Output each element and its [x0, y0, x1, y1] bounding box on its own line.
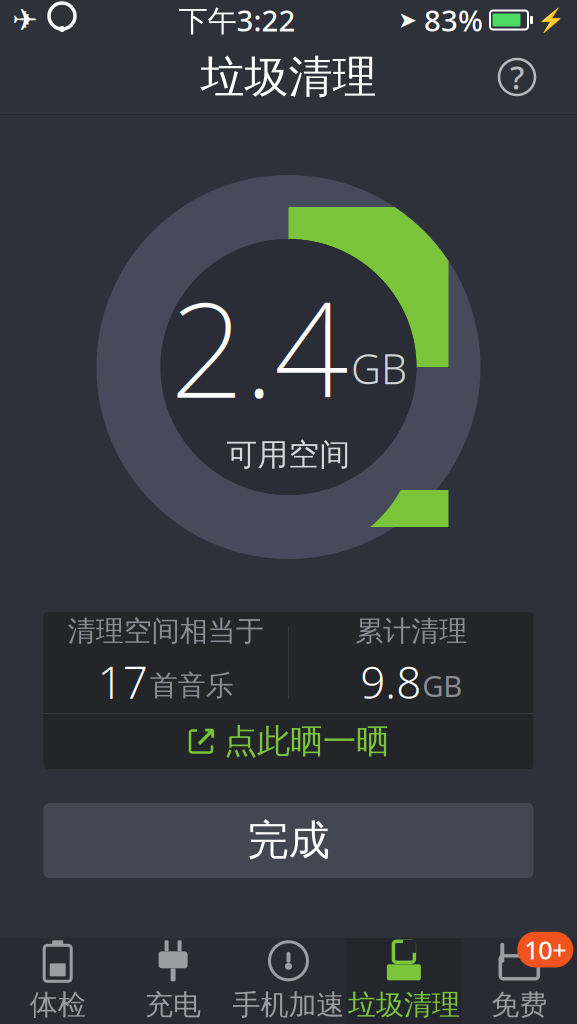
button[interactable]: 10+	[462, 938, 577, 1024]
staticText: 点此晒一晒	[224, 721, 389, 762]
staticText: 83%	[424, 0, 483, 39]
button[interactable]: 手机加速	[231, 938, 346, 1024]
staticText: ➤	[398, 7, 417, 33]
button[interactable]: ↗	[43, 714, 533, 769]
staticText: 体检	[30, 988, 86, 1022]
staticText: 垃圾清理	[348, 988, 460, 1022]
staticText: 可用空间	[226, 436, 350, 474]
staticText: ↗	[194, 721, 217, 753]
staticText: 累计清理	[355, 614, 467, 648]
staticText: 下午3:22	[178, 0, 295, 39]
staticText: 10+	[524, 933, 566, 966]
staticText: GB	[351, 341, 407, 396]
button[interactable]: 垃圾清理	[346, 938, 462, 1024]
staticText: ⚡	[537, 7, 565, 33]
button[interactable]: 完成	[43, 803, 533, 878]
staticText: 2.4	[170, 260, 348, 434]
staticText: 首音乐	[150, 668, 234, 703]
staticText: 清理空间相当于	[68, 614, 264, 648]
staticText: 完成	[247, 815, 329, 866]
staticText: 充电	[145, 988, 201, 1022]
staticText: 免费	[491, 988, 547, 1022]
button[interactable]: 体检	[0, 938, 115, 1024]
staticText: 手机加速	[232, 988, 344, 1022]
button[interactable]: 充电	[115, 938, 231, 1024]
button[interactable]: 帮助	[487, 47, 547, 107]
staticText: ✈	[12, 3, 38, 37]
staticText: 垃圾清理	[200, 50, 376, 104]
staticText: 17	[98, 652, 148, 711]
staticText: ?	[510, 56, 524, 98]
staticText: 9.8	[360, 652, 421, 711]
staticText: GB	[422, 666, 462, 705]
